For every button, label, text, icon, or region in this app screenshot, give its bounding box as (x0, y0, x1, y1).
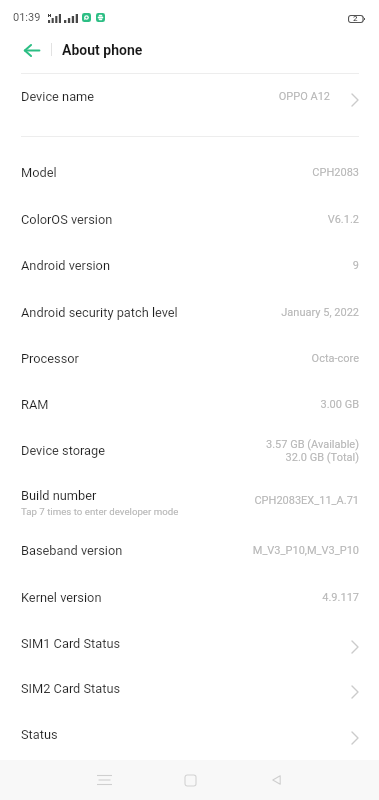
staticText: About phone (62, 42, 143, 58)
button[interactable]: Back (9, 27, 55, 73)
staticText: Build number (21, 488, 97, 503)
staticText: ColorOS version (21, 212, 113, 227)
button[interactable]: Back (254, 760, 298, 800)
staticText: 9 (352, 259, 359, 272)
staticText: Status (21, 727, 58, 742)
staticText: M_V3_P10,M_V3_P10 (252, 544, 359, 557)
staticText: Baseband version (21, 543, 123, 558)
staticText: V6.1.2 (327, 213, 359, 226)
staticText: CPH2083 (312, 166, 359, 179)
button[interactable]: Model (0, 149, 379, 196)
staticText: Device name (21, 89, 95, 104)
staticText: 01:39 (13, 11, 41, 24)
staticText: OPPO A12 (278, 90, 330, 103)
button[interactable]: Device name (0, 73, 379, 120)
staticText: RAM (21, 397, 49, 412)
staticText: SIM1 Card Status (21, 636, 121, 651)
button[interactable]: Home (168, 760, 212, 800)
button[interactable]: Android version (0, 242, 379, 289)
staticText: Device storage (21, 443, 106, 458)
button[interactable]: RAM (0, 381, 379, 428)
staticText: January 5, 2022 (281, 306, 359, 319)
staticText: Octa-core (311, 352, 359, 365)
button[interactable]: SIM1 Card Status (0, 620, 379, 667)
button[interactable]: Build number (0, 474, 379, 527)
staticText: 3.00 GB (320, 398, 359, 411)
staticText: 4.9.117 (322, 591, 359, 604)
button[interactable]: Baseband version (0, 527, 379, 574)
staticText: Android security patch level (21, 305, 178, 320)
staticText: 3.57 GB (Available) (265, 438, 359, 451)
staticText: Processor (21, 351, 79, 366)
button[interactable]: Kernel version (0, 574, 379, 621)
staticText: CPH2083EX_11_A.71 (254, 494, 359, 507)
button[interactable]: Android security patch level (0, 289, 379, 336)
button[interactable]: Processor (0, 335, 379, 382)
button[interactable]: Device storage (0, 427, 379, 474)
button[interactable]: Status (0, 711, 379, 758)
staticText: 2 (353, 14, 358, 23)
staticText: Model (21, 165, 57, 180)
staticText: Android version (21, 258, 110, 273)
button[interactable]: SIM2 Card Status (0, 665, 379, 712)
button[interactable]: Recent apps (82, 760, 126, 800)
staticText: Tap 7 times to enter developer mode (21, 506, 179, 517)
staticText: SIM2 Card Status (21, 681, 121, 696)
button[interactable]: ColorOS version (0, 196, 379, 243)
staticText: Kernel version (21, 590, 102, 605)
staticText: 32.0 GB (Total) (285, 451, 359, 464)
